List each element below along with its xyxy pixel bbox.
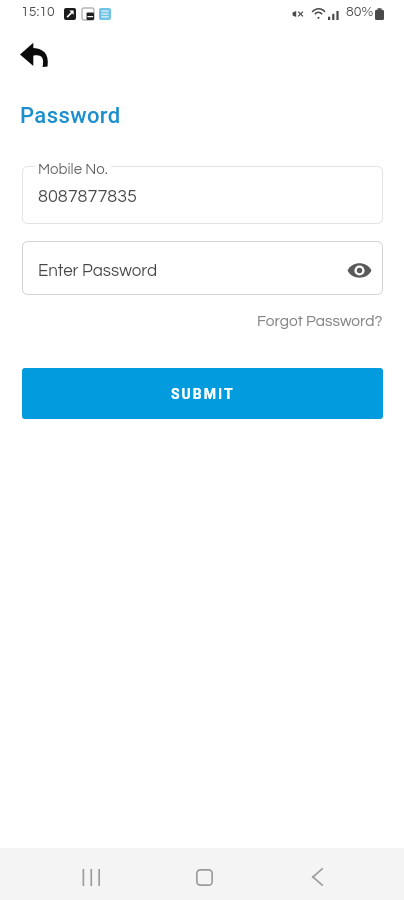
staticText: Enter Password [38,262,158,280]
staticText: 80% [346,5,374,19]
button[interactable]: Enter Password [22,241,383,295]
staticText: Password [20,103,121,129]
button[interactable]: Show password [341,252,377,288]
staticText: SUBMIT [171,386,235,402]
staticText: Mobile No. [38,162,108,177]
button[interactable]: Mobile No. [22,166,383,224]
staticText: 8087877835 [38,187,137,206]
button[interactable]: Home [174,853,234,900]
button[interactable]: Forgot Password? [257,313,383,329]
button[interactable]: SUBMIT [22,368,383,419]
button[interactable]: Back [287,853,347,900]
button[interactable]: Recent apps [60,853,120,900]
staticText: 15:10 [21,5,55,19]
button[interactable]: Back [9,29,60,80]
